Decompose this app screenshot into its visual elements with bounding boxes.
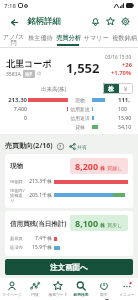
staticText: 売買分析	[56, 34, 81, 42]
button[interactable]: メニュー	[115, 278, 138, 300]
staticText: 銘柄詳細	[27, 16, 61, 27]
button[interactable]: アノ/ス閂	[0, 32, 27, 47]
staticText: 株	[100, 165, 105, 171]
button[interactable]: 現物	[5, 154, 133, 208]
staticText: 北里コーポ	[6, 58, 52, 69]
staticText: 15.9千株	[32, 244, 52, 251]
staticText: 株	[108, 85, 114, 93]
staticText: 信用買残(当日推計)	[10, 219, 70, 228]
button[interactable]: 売買分析	[54, 32, 82, 47]
button[interactable]: 戻る	[5, 14, 21, 30]
staticText: 205.1千株	[29, 192, 52, 199]
staticText: 貸株	[75, 124, 85, 130]
staticText: 15,900	[118, 114, 133, 121]
staticText: 出来高(株)	[41, 85, 67, 93]
staticText: 信	[37, 71, 42, 77]
staticText: 111,000	[118, 96, 133, 103]
button[interactable]: 株主優待	[27, 32, 54, 47]
staticText: 信用新規	[70, 106, 90, 112]
staticText: 現物買	[10, 179, 23, 184]
button[interactable]: 共有	[69, 143, 87, 150]
staticText: 03/16 15:30	[105, 54, 132, 61]
button[interactable]: 注文画面へ	[5, 259, 133, 275]
staticText: 銘柄検索	[73, 292, 89, 297]
staticText: 54,100	[118, 123, 133, 130]
staticText: 信用返済	[70, 115, 90, 121]
staticText: 3583A	[6, 71, 21, 78]
staticText: 7.4千株	[34, 235, 52, 242]
staticText: 100	[118, 105, 127, 112]
staticText: 7,400	[13, 105, 27, 112]
button[interactable]: 取引	[92, 278, 115, 300]
staticText: +1.70%	[111, 69, 132, 77]
staticText: 新規買	[10, 236, 23, 241]
staticText: 株	[100, 222, 105, 228]
staticText: 7:18	[4, 2, 16, 10]
staticText: 買越し	[107, 165, 123, 171]
button[interactable]: ヘルプ	[56, 142, 65, 151]
staticText: 株主優待	[28, 34, 53, 42]
staticText: 東P	[25, 71, 33, 77]
staticText: 返済売	[10, 245, 23, 250]
staticText: ¥	[124, 85, 128, 93]
staticText: 売買動向(2/16)	[5, 141, 53, 151]
button[interactable]: お気に入り	[103, 14, 118, 29]
staticText: マイページ	[2, 292, 22, 297]
staticText: 複数銘柄	[112, 34, 137, 42]
button[interactable]: アラート	[88, 14, 103, 29]
staticText: 買戻し	[107, 222, 123, 228]
staticText: 現物売/ 貸株返り	[10, 187, 26, 203]
staticText: アノ/ス閂	[0, 32, 27, 47]
button[interactable]: マイページ	[0, 278, 23, 300]
staticText: 0	[24, 114, 27, 121]
staticText: 検索ワード	[48, 292, 68, 297]
staticText: 8,200	[75, 160, 99, 172]
button[interactable]: 設定	[118, 14, 133, 29]
staticText: 213,300	[5, 96, 27, 103]
staticText: 共有	[77, 144, 87, 150]
staticText: 注文画面へ	[50, 263, 88, 272]
staticText: 213.3千株	[29, 178, 52, 185]
button[interactable]: 株表示	[103, 83, 119, 94]
button[interactable]: 円貨	[23, 278, 46, 300]
staticText: 現物	[75, 97, 85, 103]
staticText: 取引	[100, 292, 108, 297]
staticText: メニュー	[119, 292, 135, 297]
staticText: 8,100	[75, 217, 99, 229]
staticText: 1,552	[66, 59, 100, 77]
button[interactable]: 信用買残(当日推計)	[5, 211, 133, 256]
staticText: 現物	[10, 162, 70, 170]
button[interactable]: 検索ワード	[46, 278, 69, 300]
button[interactable]: 金額表示	[119, 83, 133, 94]
staticText: サマリー	[83, 34, 109, 42]
button[interactable]: 複数銘柄	[110, 32, 138, 47]
button[interactable]: サマリー	[82, 32, 110, 47]
staticText: ?	[59, 144, 62, 150]
staticText: 円貨	[31, 292, 39, 297]
staticText: +26	[122, 61, 132, 69]
button[interactable]: 銘柄検索	[69, 278, 92, 300]
